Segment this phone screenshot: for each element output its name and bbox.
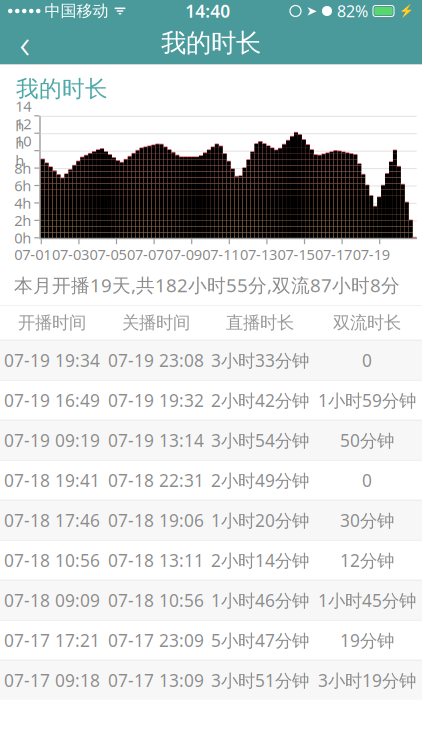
staticText: ⚡: [399, 4, 414, 18]
button[interactable]: 07-17 17:21: [0, 620, 422, 660]
staticText: 5小时47分钟: [211, 629, 309, 652]
staticText: 07-19 16:49: [4, 389, 100, 412]
staticText: 本月开播19天,共182小时55分,双流87小时8分: [14, 273, 400, 297]
button[interactable]: 07-19 09:19: [0, 420, 422, 460]
staticText: 30分钟: [340, 509, 394, 532]
staticText: 07-18 19:06: [108, 509, 204, 532]
staticText: 07-07: [127, 244, 164, 264]
staticText: ➤: [306, 3, 317, 18]
staticText: 8h: [14, 158, 31, 178]
staticText: 07-18 10:56: [4, 549, 100, 572]
button[interactable]: 07-18 09:09: [0, 580, 422, 620]
staticText: 3小时54分钟: [211, 429, 309, 452]
staticText: 07-19 19:34: [4, 349, 100, 372]
staticText: 07-09: [165, 244, 202, 264]
staticText: 2小时49分钟: [211, 469, 309, 492]
staticText: 50分钟: [340, 429, 394, 452]
button[interactable]: 07-18 10:56: [0, 540, 422, 580]
button[interactable]: 07-19 16:49: [0, 380, 422, 420]
staticText: 07-18 10:56: [108, 589, 204, 612]
button[interactable]: 07-18 19:41: [0, 460, 422, 500]
staticText: 07-17 17:21: [4, 629, 100, 652]
staticText: 07-05: [89, 244, 126, 264]
button[interactable]: 07-18 17:46: [0, 500, 422, 540]
staticText: 2小时14分钟: [211, 549, 309, 572]
button[interactable]: 07-19 19:34: [0, 340, 422, 380]
staticText: 0h: [14, 228, 31, 248]
staticText: 07-11: [202, 244, 239, 264]
staticText: ‹: [19, 16, 30, 69]
staticText: 1小时46分钟: [211, 589, 309, 612]
staticText: 07-01: [14, 244, 51, 264]
staticText: 2小时42分钟: [211, 389, 309, 412]
staticText: 3小时51分钟: [211, 669, 309, 692]
staticText: 07-17 23:09: [108, 629, 204, 652]
staticText: 07-17 13:09: [108, 669, 204, 692]
staticText: 07-19: [353, 244, 390, 264]
staticText: 19分钟: [340, 629, 394, 652]
staticText: 07-19 13:14: [108, 429, 204, 452]
staticText: 07-18 17:46: [4, 509, 100, 532]
staticText: 1小时45分钟: [318, 589, 416, 612]
staticText: 12h: [15, 114, 31, 153]
staticText: 07-18 22:31: [108, 469, 204, 492]
staticText: 直播时长: [226, 312, 294, 333]
button[interactable]: 返回: [0, 22, 50, 64]
staticText: 双流时长: [333, 312, 401, 333]
staticText: 我的时长: [161, 27, 261, 58]
staticText: 1小时59分钟: [318, 389, 416, 412]
staticText: 07-13: [240, 244, 277, 264]
staticText: 14:40: [185, 0, 230, 22]
staticText: 07-18 09:09: [4, 589, 100, 612]
staticText: 3小时19分钟: [318, 669, 416, 692]
staticText: 关播时间: [122, 312, 190, 333]
staticText: 3小时33分钟: [211, 349, 309, 372]
staticText: 07-18 13:11: [108, 549, 204, 572]
staticText: 10h: [15, 131, 31, 170]
staticText: 07-18 19:41: [4, 469, 100, 492]
staticText: 07-19 09:19: [4, 429, 100, 452]
staticText: 6h: [14, 176, 31, 195]
staticText: 4h: [14, 193, 31, 213]
staticText: 07-15: [277, 244, 314, 264]
staticText: 1小时20分钟: [211, 509, 309, 532]
staticText: 14h: [15, 96, 31, 135]
button[interactable]: 07-17 09:18: [0, 660, 422, 700]
staticText: 07-19 23:08: [108, 349, 204, 372]
staticText: 07-03: [52, 244, 89, 264]
staticText: 中国移动: [44, 1, 108, 21]
staticText: 82%: [337, 0, 368, 22]
staticText: 0: [362, 469, 372, 492]
staticText: 0: [362, 349, 372, 372]
staticText: 07-19 19:32: [108, 389, 204, 412]
staticText: 2h: [14, 211, 31, 230]
staticText: 12分钟: [340, 549, 394, 572]
staticText: 我的时长: [16, 75, 108, 103]
staticText: 07-17 09:18: [4, 669, 100, 692]
staticText: 开播时间: [18, 312, 86, 333]
staticText: 07-17: [315, 244, 352, 264]
